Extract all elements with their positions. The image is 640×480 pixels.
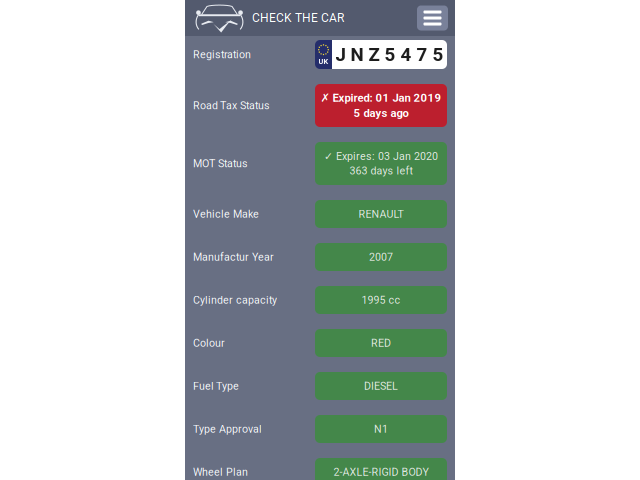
staticText: MOT Status (193, 157, 248, 170)
button[interactable]: Menu (417, 5, 448, 30)
staticText: JNZ5475 (335, 44, 443, 65)
staticText: CHECK THE CAR (252, 11, 344, 25)
staticText: Registration (193, 48, 251, 61)
staticText: N1 (374, 423, 388, 435)
staticText: 363 days left (349, 164, 412, 177)
staticText: RED (371, 337, 391, 349)
button[interactable]: Registration (193, 40, 447, 69)
staticText: 5 days ago (353, 106, 408, 120)
staticText: RENAULT (358, 208, 403, 220)
button[interactable]: MOT Status (193, 142, 447, 185)
staticText: Fuel Type (193, 380, 239, 392)
button[interactable]: Wheel Plan (193, 458, 447, 480)
staticText: 2-AXLE-RIGID BODY (333, 466, 428, 478)
staticText: Vehicle Make (193, 208, 259, 220)
button[interactable]: Vehicle Make (193, 200, 447, 228)
staticText: 2007 (369, 251, 393, 263)
staticText: Manufactur Year (193, 251, 274, 263)
staticText: DIESEL (364, 380, 398, 392)
staticText: 1995 cc (361, 294, 400, 306)
button[interactable]: Manufactur Year (193, 243, 447, 271)
staticText: ✓ Expires: 03 Jan 2020 (324, 150, 438, 162)
staticText: Colour (193, 337, 225, 349)
staticText: Cylinder capacity (193, 294, 277, 306)
staticText: UK (318, 57, 328, 66)
staticText: ✗ Expired: 01 Jan 2019 (320, 91, 441, 104)
button[interactable]: Type Approval (193, 415, 447, 443)
button[interactable]: Fuel Type (193, 372, 447, 400)
button[interactable]: Colour (193, 329, 447, 357)
button[interactable]: Road Tax Status (193, 84, 447, 127)
staticText: Road Tax Status (193, 99, 270, 112)
staticText: Wheel Plan (193, 466, 248, 478)
staticText: Type Approval (193, 423, 262, 435)
button[interactable]: Cylinder capacity (193, 286, 447, 314)
